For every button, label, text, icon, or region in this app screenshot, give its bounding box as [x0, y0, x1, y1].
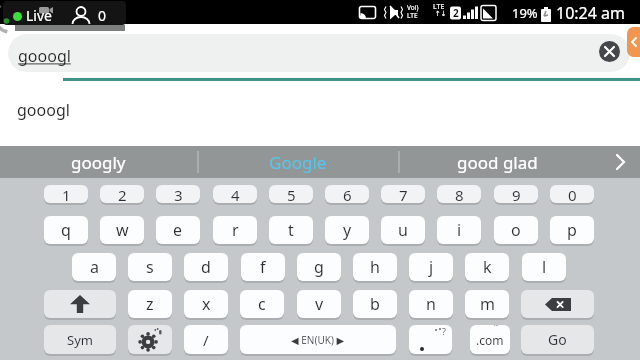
button[interactable]: a: [72, 253, 116, 281]
staticText: d: [201, 256, 211, 278]
staticText: h: [370, 256, 380, 278]
button[interactable]: b: [353, 290, 397, 318]
staticText: c: [258, 293, 266, 315]
button[interactable]: [521, 290, 594, 318]
staticText: gooogl: [18, 45, 71, 67]
button[interactable]: [44, 290, 116, 318]
staticText: q: [61, 219, 71, 241]
button[interactable]: /: [184, 325, 228, 354]
button[interactable]: m: [465, 290, 509, 318]
button[interactable]: Go: [521, 325, 594, 354]
staticText: Live: [26, 6, 52, 25]
button[interactable]: 1: [44, 185, 88, 203]
button[interactable]: u: [381, 216, 425, 244]
button[interactable]: good glad: [398, 146, 596, 178]
button[interactable]: 6: [325, 185, 369, 203]
staticText: n: [426, 293, 436, 315]
staticText: 7: [399, 185, 408, 203]
staticText: ˙˙˙: [494, 325, 499, 334]
staticText: ◀ EN(UK) ▶: [291, 333, 345, 347]
staticText: gooogl: [17, 99, 70, 121]
staticText: w: [116, 219, 129, 241]
staticText: r: [232, 219, 239, 241]
staticText: m: [480, 293, 495, 315]
button[interactable]: x: [184, 290, 228, 318]
button[interactable]: Google: [197, 146, 398, 178]
button[interactable]: 5: [269, 185, 313, 203]
staticText: l: [542, 256, 547, 278]
button[interactable]: t: [269, 216, 313, 244]
staticText: x: [202, 293, 211, 315]
staticText: 6: [343, 185, 352, 203]
button[interactable]: 2: [100, 185, 144, 203]
button[interactable]: c: [240, 290, 284, 318]
button[interactable]: w: [100, 216, 144, 244]
staticText: ?: [442, 325, 446, 337]
staticText: f: [260, 256, 266, 278]
button[interactable]: j: [409, 253, 453, 281]
button[interactable]: y: [325, 216, 369, 244]
button[interactable]: googly: [0, 146, 197, 178]
staticText: 2: [453, 6, 459, 20]
staticText: 10:24 am: [556, 2, 625, 24]
staticText: 3: [174, 185, 183, 203]
button[interactable]: 9: [494, 185, 538, 203]
button[interactable]: p: [550, 216, 594, 244]
staticText: LTE: [433, 2, 445, 12]
staticText: 4: [231, 185, 240, 203]
button[interactable]: z: [128, 290, 172, 318]
staticText: /: [203, 330, 209, 350]
staticText: googly: [71, 151, 126, 174]
button[interactable]: [8, 34, 630, 72]
staticText: b: [370, 293, 380, 315]
staticText: good glad: [457, 151, 538, 174]
staticText: j: [429, 256, 434, 278]
staticText: i: [457, 219, 462, 241]
staticText: o: [511, 219, 521, 241]
staticText: 5: [287, 185, 296, 203]
staticText: Voi): [407, 3, 419, 12]
button[interactable]: [128, 325, 172, 354]
button[interactable]: .com: [470, 325, 510, 354]
staticText: .com: [476, 332, 504, 348]
staticText: 1: [62, 185, 71, 203]
staticText: p: [567, 219, 577, 241]
button[interactable]: [3, 1, 126, 25]
button[interactable]: 8: [437, 185, 481, 203]
staticText: 9: [512, 185, 521, 203]
button[interactable]: [627, 27, 640, 57]
staticText: 8: [455, 185, 464, 203]
button[interactable]: g: [297, 253, 341, 281]
staticText: a: [90, 256, 99, 278]
button[interactable]: ◀ EN(UK) ▶: [240, 325, 396, 354]
staticText: ↑↓: [435, 10, 447, 18]
staticText: 0: [98, 6, 107, 25]
button[interactable]: i: [437, 216, 481, 244]
button[interactable]: k: [465, 253, 509, 281]
button[interactable]: r: [213, 216, 257, 244]
staticText: y: [343, 219, 352, 241]
button[interactable]: e: [156, 216, 200, 244]
staticText: 19%: [512, 4, 538, 22]
button[interactable]: [599, 41, 620, 62]
staticText: s: [146, 256, 154, 278]
button[interactable]: s: [128, 253, 172, 281]
button[interactable]: h: [353, 253, 397, 281]
staticText: z: [146, 293, 154, 315]
button[interactable]: Sym: [44, 325, 116, 354]
button[interactable]: 0: [550, 185, 594, 203]
button[interactable]: n: [409, 290, 453, 318]
button[interactable]: v: [297, 290, 341, 318]
button[interactable]: o: [494, 216, 538, 244]
button[interactable]: 3: [156, 185, 200, 203]
button[interactable]: q: [44, 216, 88, 244]
staticText: g: [314, 256, 324, 278]
button[interactable]: 4: [213, 185, 257, 203]
button[interactable]: f: [241, 253, 285, 281]
button[interactable]: l: [522, 253, 566, 281]
button[interactable]: [600, 146, 640, 178]
button[interactable]: d: [184, 253, 228, 281]
button[interactable]: ?: [409, 325, 452, 354]
staticText: 2: [118, 185, 127, 203]
button[interactable]: 7: [381, 185, 425, 203]
